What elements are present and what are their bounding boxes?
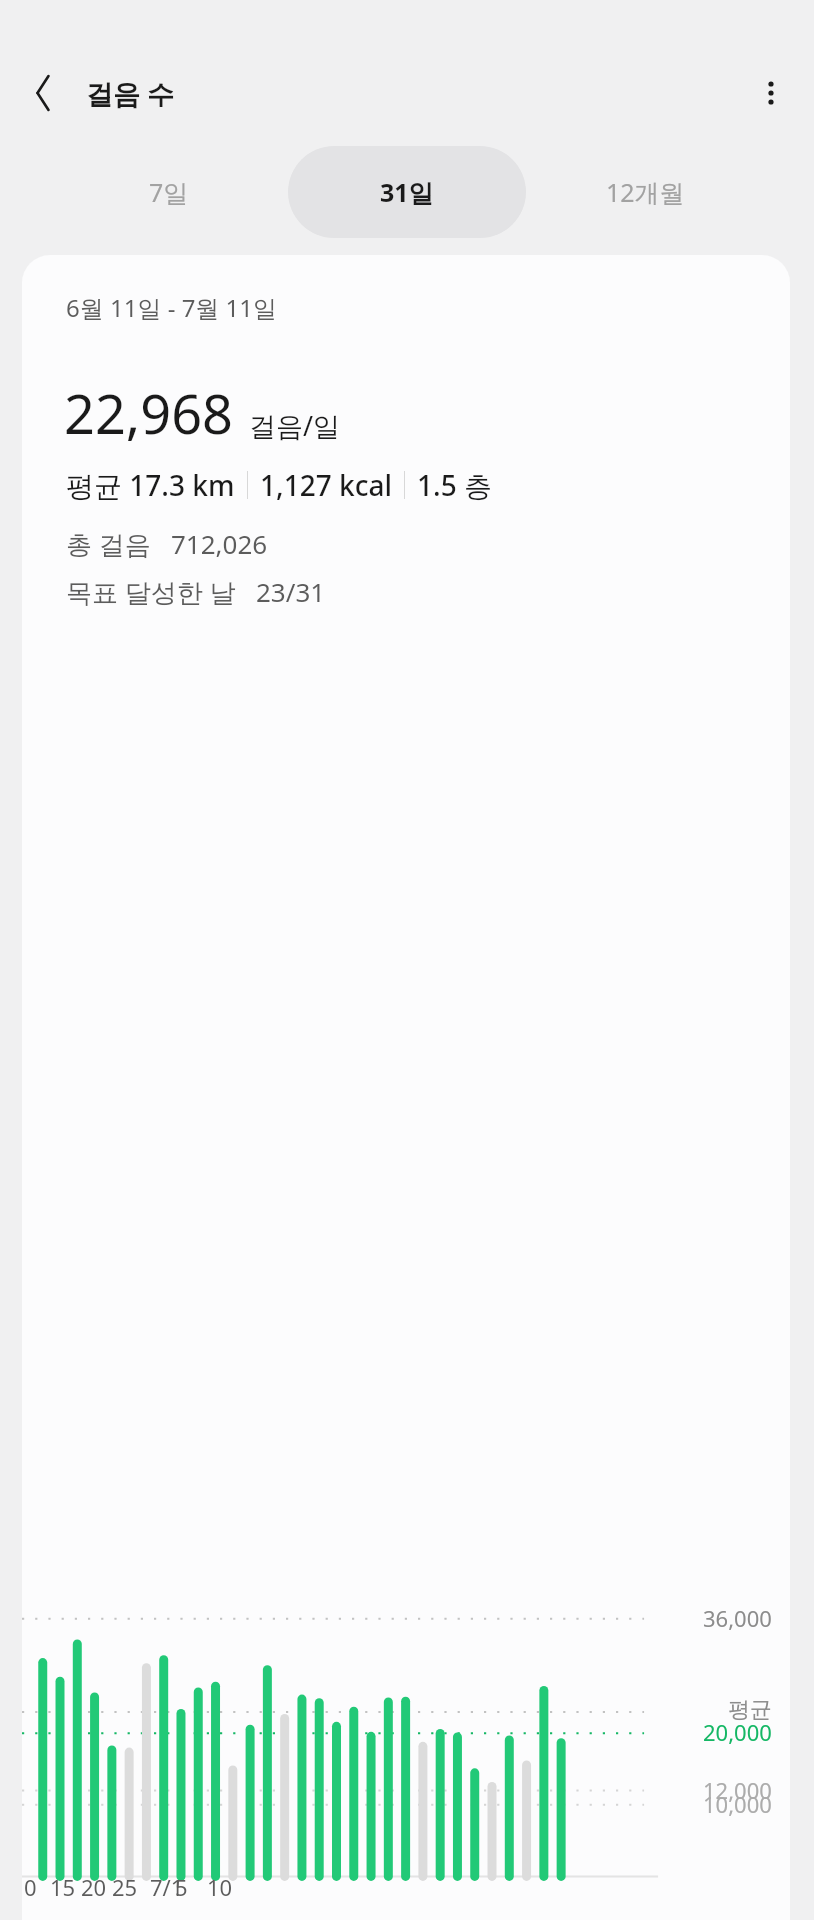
staticText: 총 걸음	[66, 526, 151, 562]
button[interactable]: 31일	[288, 146, 526, 238]
button[interactable]: 12개월	[556, 146, 734, 238]
staticText: 걸음/일	[249, 407, 341, 444]
staticText: 36,000	[703, 1603, 772, 1633]
staticText: 목표 달성한 날	[66, 574, 236, 610]
staticText: 23/31	[256, 574, 326, 609]
staticText: 12개월	[606, 175, 685, 209]
staticText: 7일	[149, 175, 189, 209]
staticText: 15	[50, 1872, 76, 1902]
staticText: 20	[81, 1872, 107, 1902]
staticText: 1,127 kcal	[260, 466, 392, 504]
staticText: 걸음 수	[86, 75, 175, 112]
staticText: 평균 17.3 km	[66, 466, 235, 504]
staticText: 7/1	[150, 1872, 184, 1902]
button[interactable]: More options	[742, 64, 800, 122]
staticText: 평균	[728, 1696, 772, 1724]
staticText: 20,000	[703, 1717, 772, 1747]
staticText: 22,968	[64, 376, 233, 450]
staticText: 1.5 층	[417, 466, 492, 504]
staticText: 10	[207, 1872, 233, 1902]
button[interactable]: 7일	[110, 146, 228, 238]
staticText: 31일	[380, 175, 434, 209]
staticText: 712,026	[171, 526, 268, 561]
staticText: 5	[175, 1872, 188, 1902]
button[interactable]: Back	[12, 64, 70, 122]
staticText: 0	[24, 1872, 37, 1902]
staticText: 6월 11일 - 7월 11일	[66, 291, 278, 324]
staticText: 25	[112, 1872, 138, 1902]
staticText: 10,000	[703, 1789, 772, 1819]
staticText: 12,000	[703, 1775, 772, 1805]
